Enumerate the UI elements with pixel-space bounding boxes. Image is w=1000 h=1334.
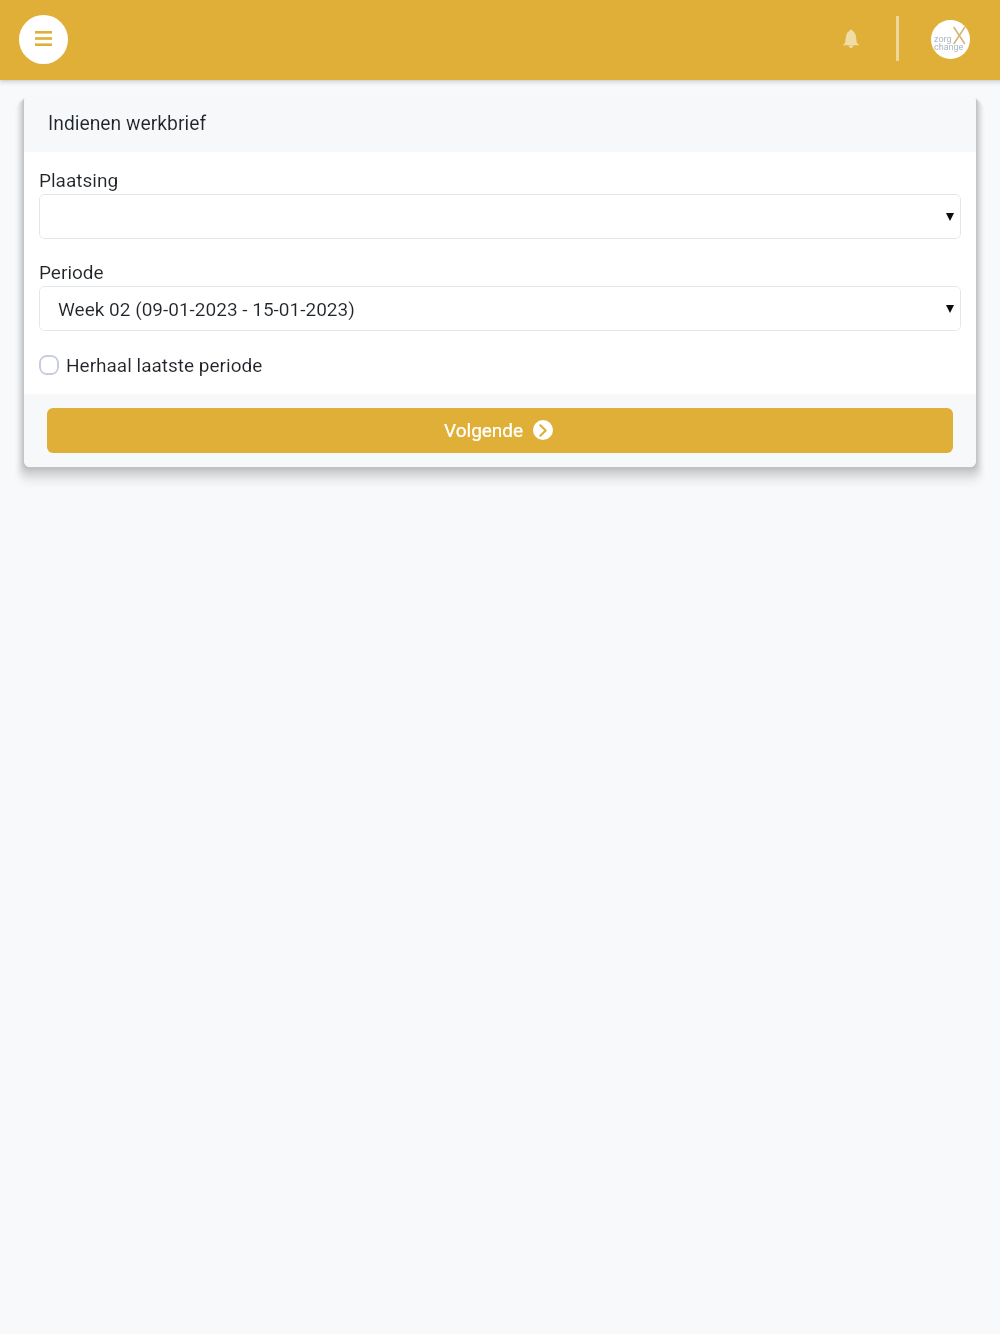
button[interactable]: Menu	[19, 15, 68, 64]
staticText: Week 02 (09-01-2023 - 15-01-2023)	[58, 298, 355, 320]
button[interactable]: Notifications	[829, 17, 873, 61]
button[interactable]: Account	[931, 20, 970, 59]
button[interactable]: Volgende	[47, 408, 953, 453]
button[interactable]: Herhaal laatste periode	[39, 350, 961, 380]
button[interactable]: Plaatsing kiezen	[39, 194, 961, 239]
staticText: zorg	[934, 34, 952, 45]
staticText: change	[934, 42, 964, 53]
staticText: Indienen werkbrief	[48, 112, 207, 135]
staticText: Periode	[39, 261, 104, 283]
button[interactable]: Periode kiezen	[39, 286, 961, 331]
staticText: Plaatsing	[39, 169, 119, 191]
staticText: Herhaal laatste periode	[66, 354, 263, 376]
staticText: Volgende	[444, 419, 524, 441]
